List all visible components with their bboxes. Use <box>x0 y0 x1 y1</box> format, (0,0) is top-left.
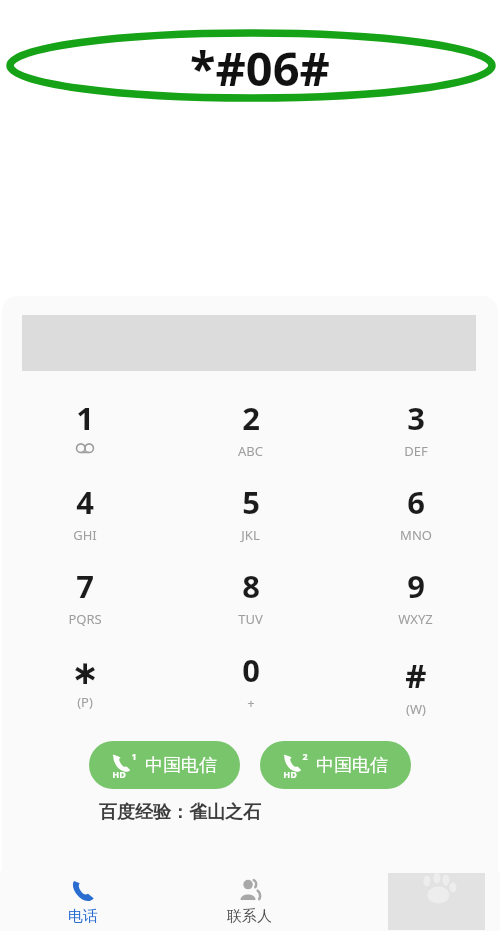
staticText: # <box>405 653 427 698</box>
button[interactable]: 4 <box>2 479 168 563</box>
button[interactable]: 2 <box>260 741 411 789</box>
button[interactable]: ∗ <box>2 647 168 731</box>
staticText: (P) <box>77 693 93 711</box>
button[interactable]: 3 <box>333 395 498 479</box>
button[interactable]: 2 <box>168 395 333 479</box>
staticText: 1 <box>76 397 94 439</box>
staticText: *#06# <box>190 36 330 100</box>
staticText: JKL <box>241 526 260 544</box>
staticText: 0 <box>242 649 260 691</box>
button[interactable]: 6 <box>333 479 498 563</box>
staticText: PQRS <box>68 610 102 628</box>
staticText: 8 <box>242 565 260 607</box>
button[interactable]: # <box>333 647 498 731</box>
staticText: 7 <box>76 565 94 607</box>
staticText: HD <box>283 768 297 780</box>
staticText: 4 <box>76 481 94 523</box>
button[interactable]: 1 <box>2 395 168 479</box>
staticText: 联系人 <box>227 907 272 926</box>
staticText: 5 <box>242 481 260 523</box>
staticText: 2 <box>242 397 260 439</box>
staticText: WXYZ <box>398 610 433 628</box>
staticText: DEF <box>404 442 428 460</box>
staticText: HD <box>112 768 126 780</box>
staticText: ∗ <box>71 653 99 691</box>
button[interactable]: 1 <box>89 741 240 789</box>
staticText: 中国电信 <box>145 754 217 777</box>
staticText: 6 <box>407 481 425 523</box>
staticText: TUV <box>238 610 263 628</box>
staticText: + <box>247 694 255 712</box>
staticText: 3 <box>407 397 425 439</box>
button[interactable]: 5 <box>168 479 333 563</box>
staticText: GHI <box>73 526 97 544</box>
button[interactable]: 联系人 <box>166 871 333 931</box>
staticText: 9 <box>407 565 425 607</box>
button[interactable]: 电话 <box>0 871 166 931</box>
staticText: 中国电信 <box>316 754 388 777</box>
staticText: 1 <box>131 750 137 762</box>
staticText: ABC <box>238 442 263 460</box>
button[interactable]: 7 <box>2 563 168 647</box>
staticText: 2 <box>302 750 308 762</box>
staticText: 电话 <box>68 907 98 926</box>
staticText: MNO <box>400 526 432 544</box>
button[interactable]: 8 <box>168 563 333 647</box>
button[interactable]: 9 <box>333 563 498 647</box>
staticText: 百度经验：雀山之石 <box>99 801 261 824</box>
staticText: (W) <box>406 700 426 718</box>
button[interactable]: 0 <box>168 647 333 731</box>
